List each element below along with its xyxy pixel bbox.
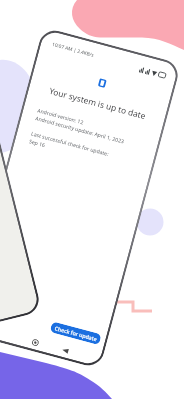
staticText: 10:07 AM | 2.4KB/s bbox=[51, 41, 95, 59]
button[interactable]: Home bbox=[28, 335, 43, 350]
staticText: Sep 16 bbox=[28, 137, 47, 148]
button[interactable]: Back bbox=[58, 343, 73, 358]
staticText: Android security update: April 1, 2023 bbox=[35, 114, 125, 145]
staticText: Check for update bbox=[54, 324, 98, 342]
button[interactable]: Check for update bbox=[50, 321, 102, 345]
staticText: Last successful check for update: bbox=[31, 129, 110, 157]
staticText: Your system is up to date bbox=[48, 85, 147, 121]
staticText: Android version: 12 bbox=[37, 106, 85, 126]
